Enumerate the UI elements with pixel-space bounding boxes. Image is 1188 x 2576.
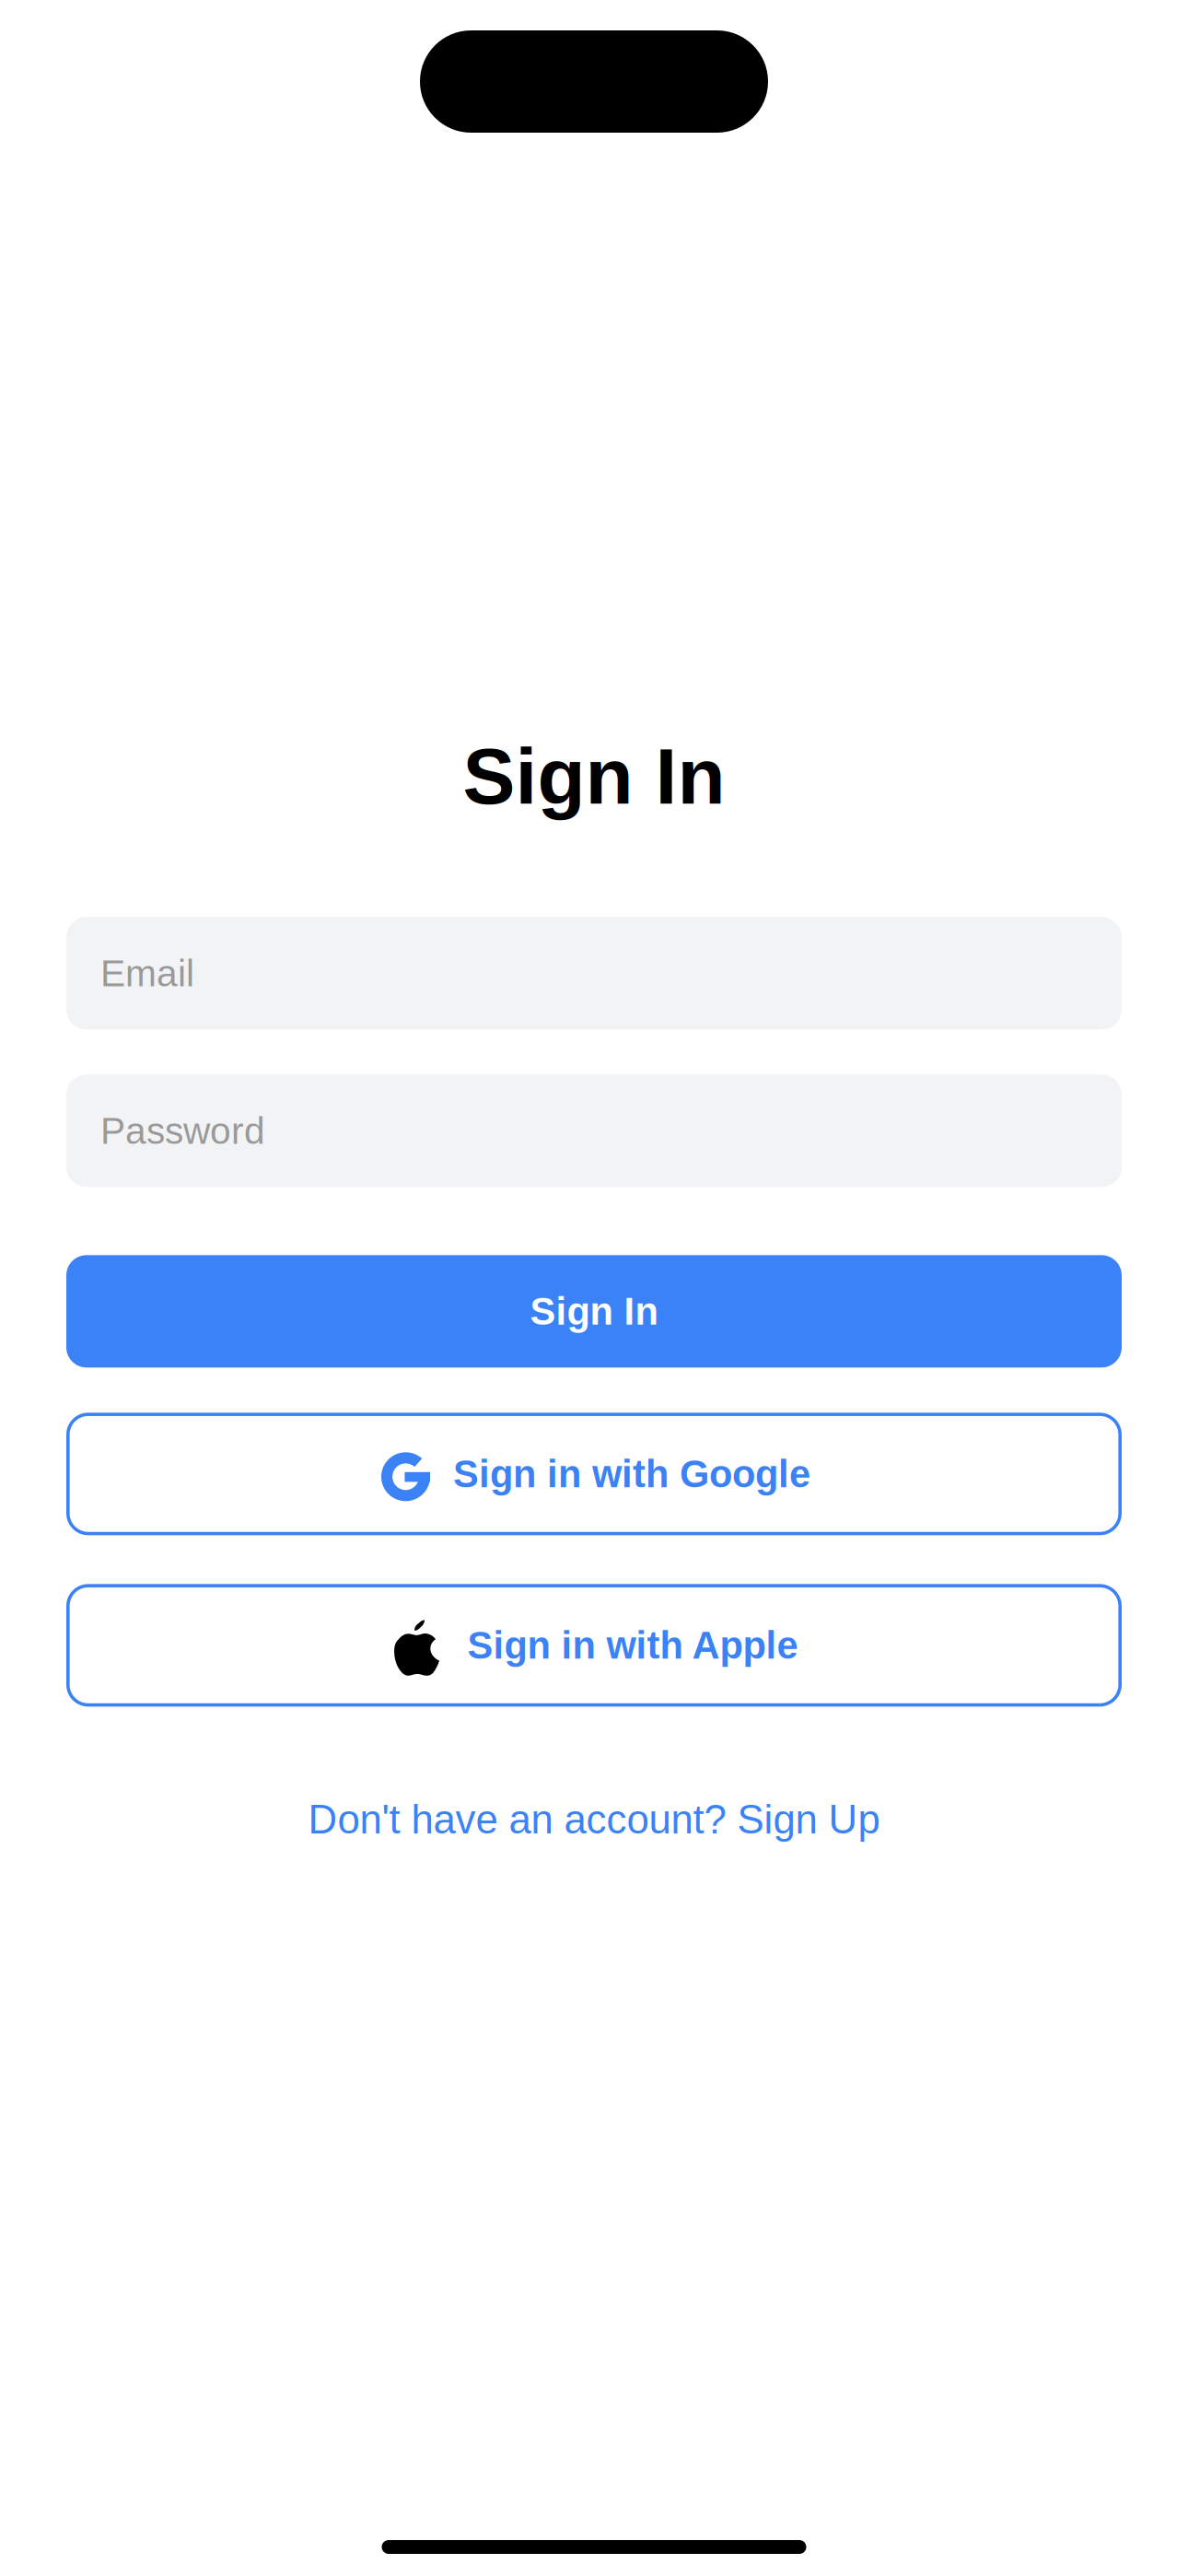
staticText: Sign In bbox=[463, 732, 725, 820]
button[interactable]: Email bbox=[66, 917, 1122, 1029]
button[interactable]: Password bbox=[66, 1075, 1122, 1187]
staticText: Sign in with Apple bbox=[467, 1624, 798, 1667]
staticText: Email bbox=[100, 952, 194, 994]
button[interactable]: Sign In bbox=[66, 1255, 1122, 1368]
staticText: Don't have an account? Sign Up bbox=[308, 1797, 880, 1842]
button[interactable]: Don't have an account? Sign Up bbox=[308, 1797, 880, 1842]
staticText: Password bbox=[100, 1110, 265, 1152]
button[interactable]: Sign in with Google bbox=[66, 1413, 1122, 1535]
button[interactable]: Sign in with Apple bbox=[66, 1584, 1122, 1707]
staticText: Sign In bbox=[530, 1290, 658, 1333]
staticText: Sign in with Google bbox=[453, 1453, 810, 1495]
